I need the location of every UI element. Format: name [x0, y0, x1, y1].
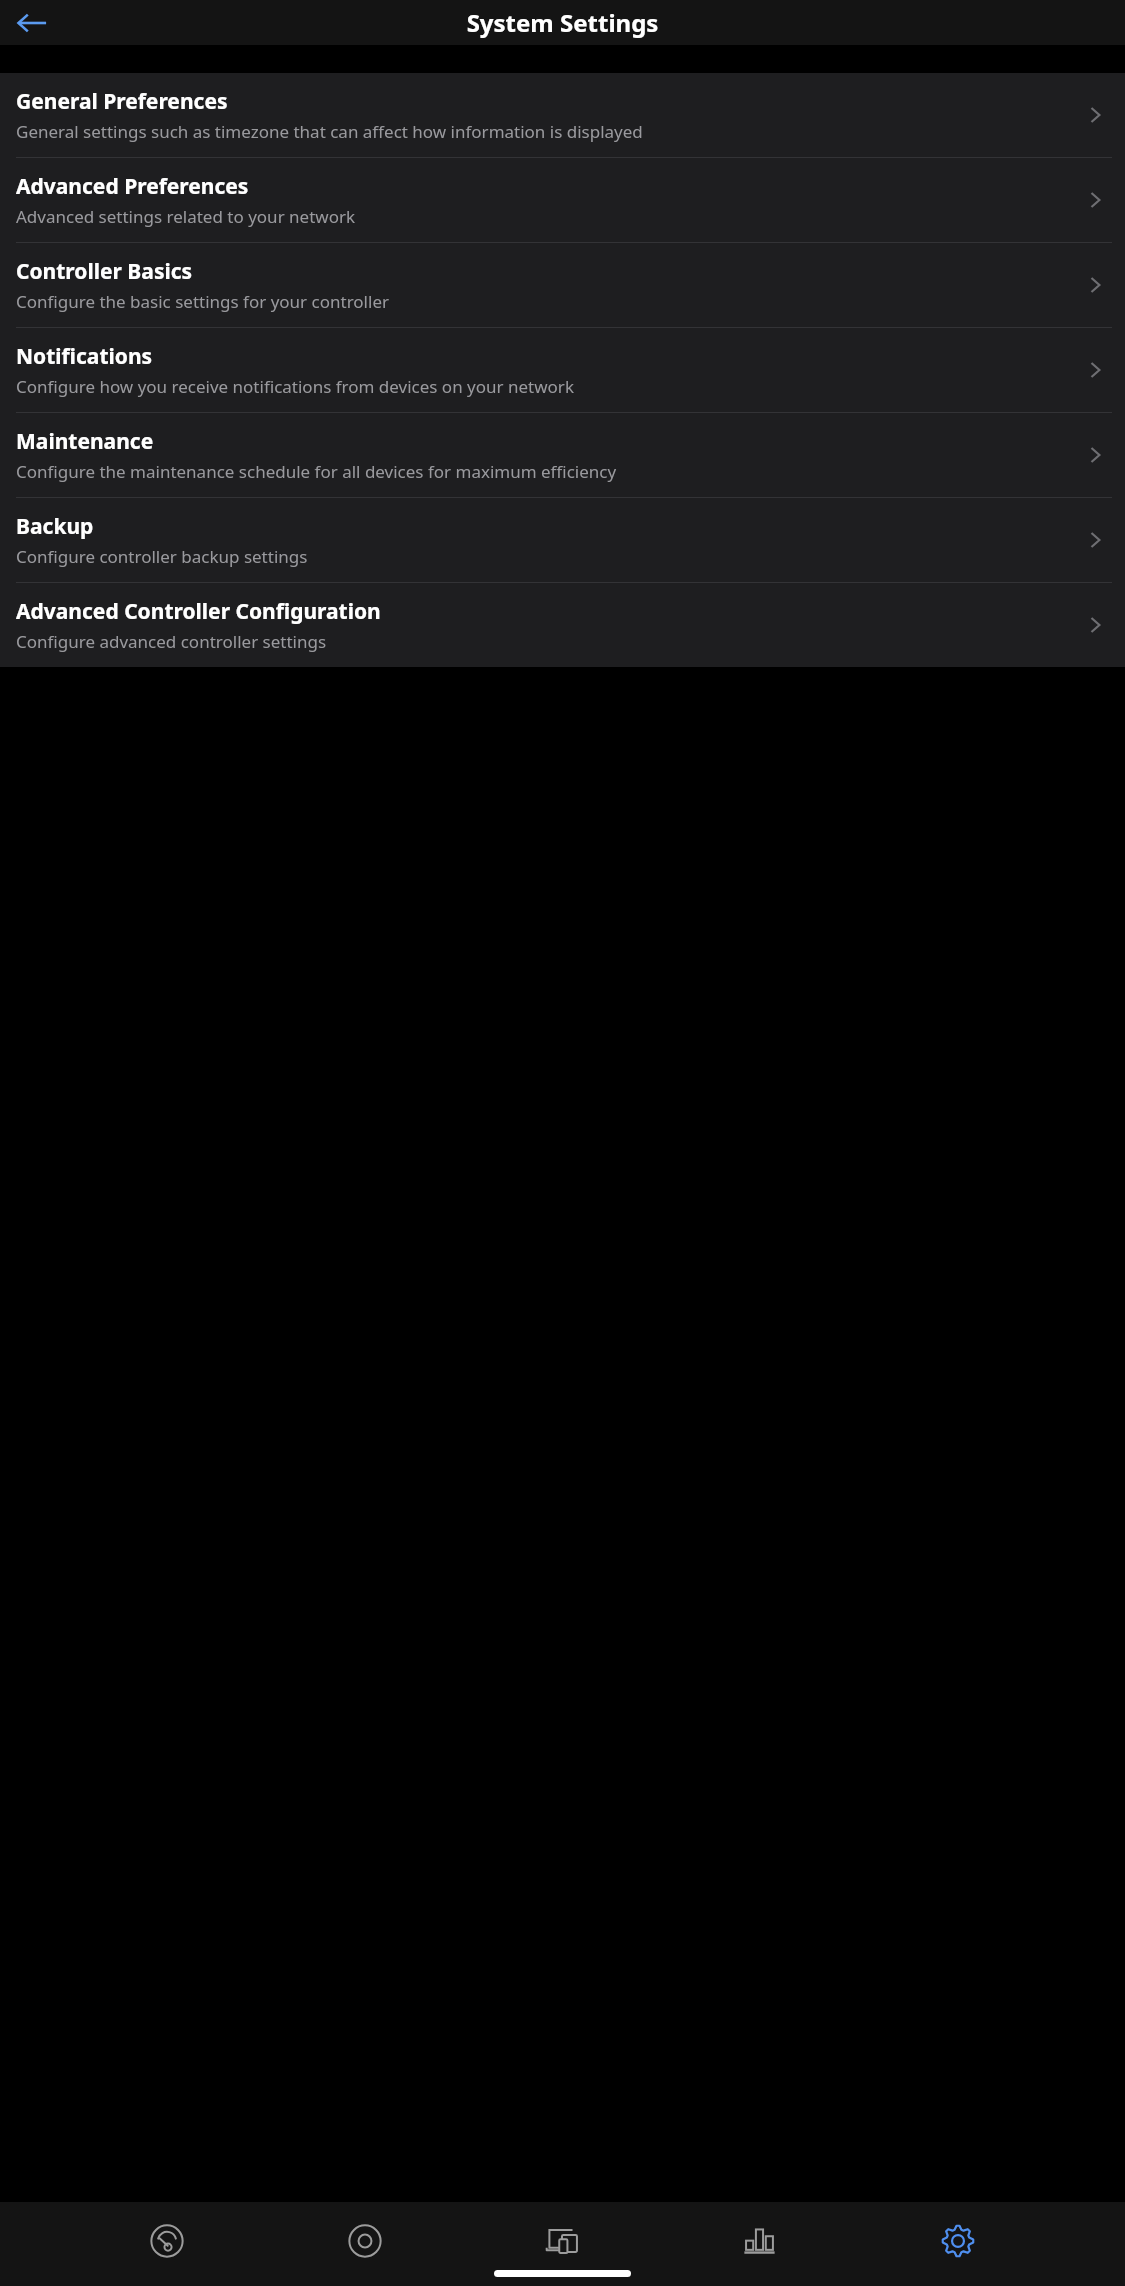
button[interactable]: Dashboard	[136, 2210, 198, 2272]
staticText: Notifications	[16, 342, 153, 371]
staticText: Maintenance	[16, 427, 154, 456]
staticText: Configure the basic settings for your co…	[16, 290, 389, 313]
button[interactable]: General Preferences	[0, 73, 1125, 157]
staticText: Configure controller backup settings	[16, 545, 308, 568]
staticText: Advanced settings related to your networ…	[16, 205, 356, 228]
button[interactable]: Advanced Controller Configuration	[0, 583, 1125, 667]
button[interactable]: Backup	[0, 498, 1125, 582]
staticText: Advanced Controller Configuration	[16, 597, 381, 626]
button[interactable]: Back	[8, 0, 56, 45]
staticText: Configure how you receive notifications …	[16, 375, 574, 398]
staticText: Advanced Preferences	[16, 172, 249, 201]
button[interactable]: Controller Basics	[0, 243, 1125, 327]
staticText: General settings such as timezone that c…	[16, 120, 643, 143]
staticText: Backup	[16, 512, 94, 541]
staticText: Controller Basics	[16, 257, 193, 286]
staticText: General Preferences	[16, 87, 228, 116]
staticText: Configure advanced controller settings	[16, 630, 327, 653]
button[interactable]: Advanced Preferences	[0, 158, 1125, 242]
button[interactable]: Devices overview	[334, 2210, 396, 2272]
button[interactable]: Settings	[927, 2210, 989, 2272]
button[interactable]: Clients	[532, 2210, 594, 2272]
button[interactable]: Maintenance	[0, 413, 1125, 497]
staticText: Configure the maintenance schedule for a…	[16, 460, 617, 483]
button[interactable]: Notifications	[0, 328, 1125, 412]
staticText: System Settings	[0, 6, 1125, 39]
button[interactable]: Statistics	[729, 2210, 791, 2272]
